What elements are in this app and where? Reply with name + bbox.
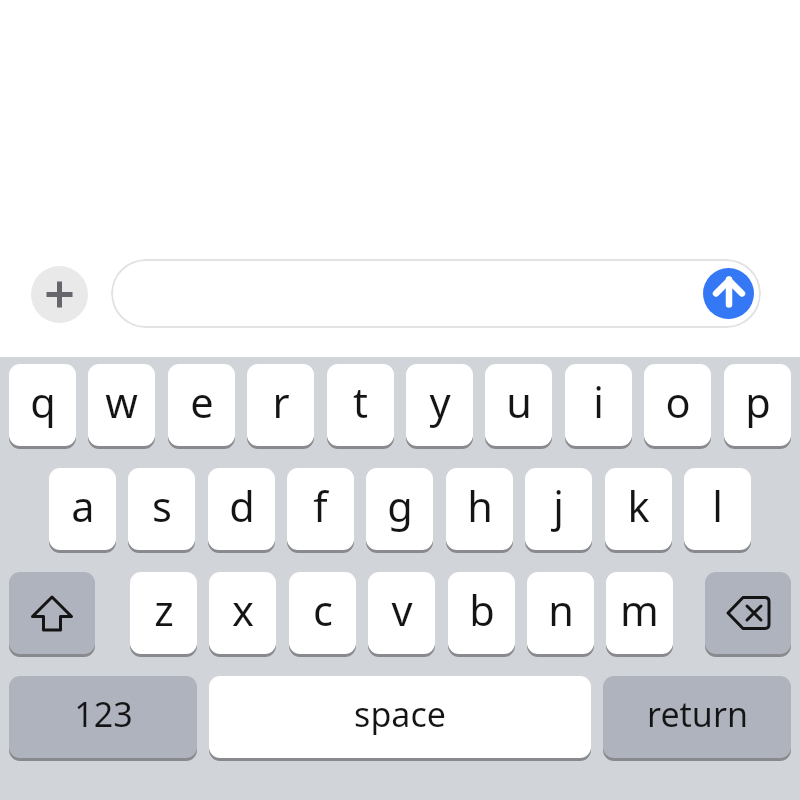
button[interactable]: o: [644, 364, 711, 446]
button[interactable]: f: [287, 468, 354, 550]
staticText: l: [712, 478, 723, 535]
button[interactable]: q: [9, 364, 76, 446]
staticText: z: [154, 582, 174, 639]
button[interactable]: y: [406, 364, 473, 446]
button[interactable]: z: [130, 572, 197, 654]
button[interactable]: space: [209, 676, 591, 758]
staticText: r: [272, 374, 290, 431]
button[interactable]: return: [603, 676, 791, 758]
button[interactable]: t: [327, 364, 394, 446]
staticText: e: [190, 374, 214, 431]
staticText: o: [665, 374, 691, 431]
staticText: j: [553, 478, 564, 535]
staticText: u: [506, 374, 532, 431]
button[interactable]: d: [208, 468, 275, 550]
button[interactable]: 123: [9, 676, 197, 758]
staticText: b: [469, 582, 495, 639]
staticText: i: [593, 374, 604, 431]
button[interactable]: w: [88, 364, 155, 446]
button[interactable]: l: [684, 468, 751, 550]
button[interactable]: h: [446, 468, 513, 550]
button[interactable]: u: [485, 364, 552, 446]
button[interactable]: [31, 266, 88, 323]
staticText: q: [30, 374, 56, 431]
staticText: d: [229, 478, 255, 535]
button[interactable]: c: [289, 572, 356, 654]
button[interactable]: p: [724, 364, 791, 446]
button[interactable]: m: [606, 572, 673, 654]
button[interactable]: [705, 572, 791, 654]
button[interactable]: n: [527, 572, 594, 654]
button[interactable]: s: [128, 468, 195, 550]
staticText: v: [391, 582, 413, 639]
staticText: h: [467, 478, 493, 535]
button[interactable]: [703, 268, 754, 319]
button[interactable]: j: [525, 468, 592, 550]
staticText: return: [647, 691, 748, 737]
staticText: c: [313, 582, 333, 639]
staticText: 123: [74, 691, 133, 737]
button[interactable]: v: [368, 572, 435, 654]
button[interactable]: [111, 259, 761, 328]
staticText: w: [105, 374, 138, 431]
button[interactable]: x: [209, 572, 276, 654]
staticText: n: [548, 582, 574, 639]
staticText: x: [232, 582, 254, 639]
staticText: y: [429, 374, 451, 431]
button[interactable]: g: [366, 468, 433, 550]
staticText: space: [354, 691, 446, 737]
button[interactable]: k: [605, 468, 672, 550]
button[interactable]: a: [49, 468, 116, 550]
staticText: p: [745, 374, 771, 431]
button[interactable]: b: [448, 572, 515, 654]
staticText: k: [627, 478, 650, 535]
button[interactable]: e: [168, 364, 235, 446]
staticText: m: [620, 582, 659, 639]
button[interactable]: r: [247, 364, 314, 446]
button[interactable]: [9, 572, 95, 654]
button[interactable]: i: [565, 364, 632, 446]
staticText: s: [152, 478, 172, 535]
staticText: g: [387, 478, 413, 535]
staticText: a: [71, 478, 95, 535]
staticText: t: [353, 374, 368, 431]
staticText: f: [313, 478, 328, 535]
